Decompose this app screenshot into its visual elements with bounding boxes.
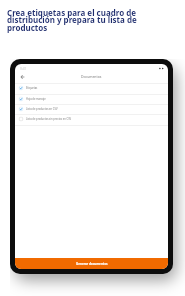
staticText: Crea etiquetas para el cuadro de distrib… xyxy=(7,7,141,34)
staticText: Lista de productos sin precios en CSV xyxy=(26,117,72,121)
button[interactable]: Hoja de marcaje xyxy=(15,94,168,104)
staticText: Etiquetas xyxy=(26,86,38,90)
staticText: Hoja de marcaje xyxy=(26,97,46,101)
staticText: Documentos xyxy=(81,74,102,79)
button[interactable]: Generar documentos xyxy=(15,258,168,269)
staticText: Lista de productos en CSV xyxy=(26,107,58,111)
button[interactable]: Etiquetas xyxy=(15,83,168,93)
button[interactable]: Lista de productos sin precios en CSV xyxy=(15,114,168,124)
button[interactable]: Lista de productos en CSV xyxy=(15,104,168,114)
button[interactable]: Back xyxy=(17,72,27,82)
staticText: 9:41 xyxy=(20,67,27,71)
staticText: Generar documentos xyxy=(76,262,108,266)
